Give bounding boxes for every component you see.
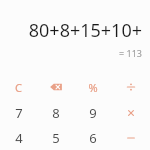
staticText: 5: [52, 129, 60, 147]
staticText: 6: [89, 129, 97, 147]
button[interactable]: Multiply: [112, 100, 150, 126]
button[interactable]: C: [0, 74, 37, 100]
staticText: = 113: [8, 47, 142, 59]
staticText: 80+8+15+10+: [8, 18, 142, 43]
staticText: 8: [52, 104, 60, 122]
button[interactable]: 8: [37, 100, 74, 126]
staticText: 7: [15, 104, 23, 122]
button[interactable]: Subtract: [112, 126, 150, 150]
staticText: %: [88, 80, 98, 95]
button[interactable]: 6: [74, 126, 112, 150]
button[interactable]: 9: [74, 100, 112, 126]
button[interactable]: 7: [0, 100, 37, 126]
button[interactable]: Divide: [112, 74, 150, 100]
button[interactable]: Backspace: [37, 74, 74, 100]
button[interactable]: %: [74, 74, 112, 100]
button[interactable]: 4: [0, 126, 37, 150]
staticText: 4: [15, 129, 23, 147]
button[interactable]: 5: [37, 126, 74, 150]
staticText: C: [15, 80, 22, 95]
staticText: 9: [89, 104, 97, 122]
